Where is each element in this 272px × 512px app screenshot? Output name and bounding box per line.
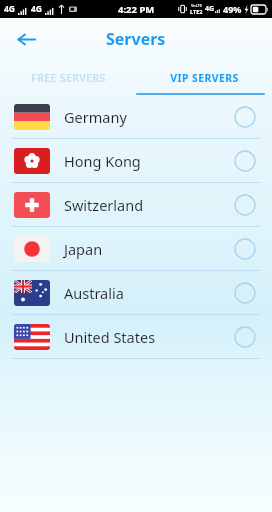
button[interactable]: Back [10, 23, 42, 55]
staticText: Switzerland [64, 195, 144, 215]
staticText: VoLTE [191, 3, 203, 8]
staticText: 4:22 PM [118, 3, 155, 16]
button[interactable]: Australia [0, 271, 272, 314]
button[interactable]: United States [0, 315, 272, 358]
staticText: 4G [205, 4, 215, 14]
staticText: 4G [4, 3, 16, 15]
staticText: United States [64, 327, 156, 347]
staticText: 49% [223, 3, 242, 15]
staticText: Servers [106, 28, 166, 50]
staticText: Australia [64, 283, 124, 303]
staticText: VIP SERVERS [170, 71, 239, 85]
button[interactable]: Switzerland [0, 183, 272, 226]
button[interactable]: Hong Kong [0, 139, 272, 182]
staticText: Hong Kong [64, 151, 141, 171]
button[interactable]: VIP SERVERS [136, 60, 272, 95]
button[interactable]: Germany [0, 95, 272, 138]
staticText: FREE SERVERS [31, 71, 106, 85]
staticText: 4G [31, 3, 43, 15]
button[interactable]: Japan [0, 227, 272, 270]
staticText: LTE2 [190, 8, 203, 15]
staticText: Germany [64, 107, 127, 127]
button[interactable]: FREE SERVERS [0, 60, 136, 95]
staticText: Japan [64, 239, 103, 259]
